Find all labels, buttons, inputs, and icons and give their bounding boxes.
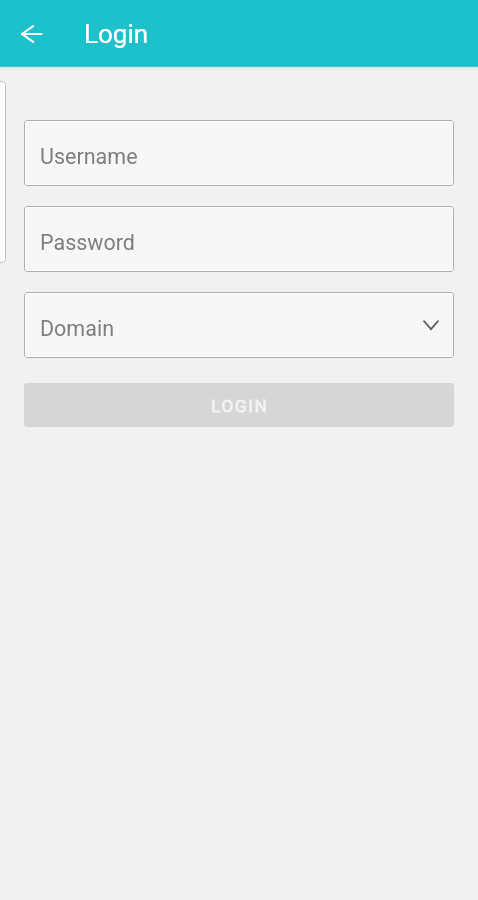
button[interactable]: Username (24, 120, 454, 186)
staticText: Domain (40, 316, 115, 341)
button[interactable]: Domain (24, 292, 454, 358)
staticText: Password (40, 230, 135, 255)
button[interactable]: Password (24, 206, 454, 272)
other: Show domain options (424, 320, 438, 330)
staticText: Username (40, 144, 138, 169)
staticText: Login (84, 19, 149, 49)
staticText: LOGIN (211, 396, 269, 416)
button[interactable]: LOGIN (24, 383, 454, 427)
button[interactable]: Back (8, 11, 54, 57)
